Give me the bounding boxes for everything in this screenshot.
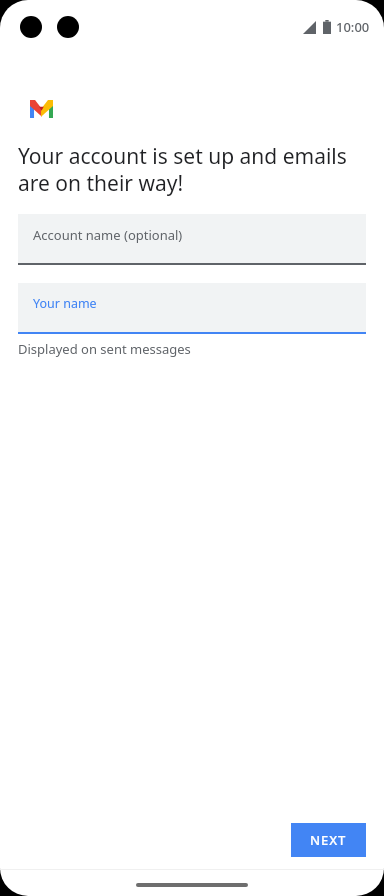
- button[interactable]: Account name (optional): [18, 214, 366, 265]
- staticText: NEXT: [310, 831, 347, 849]
- staticText: 10:00: [336, 18, 370, 36]
- staticText: Your name: [33, 295, 97, 312]
- button[interactable]: NEXT: [291, 823, 366, 857]
- staticText: Displayed on sent messages: [18, 340, 191, 358]
- staticText: Account name (optional): [33, 226, 183, 244]
- other: Home gesture handle: [136, 883, 248, 887]
- staticText: Your account is set up and emails are on…: [18, 142, 362, 197]
- button[interactable]: Your name: [18, 283, 366, 334]
